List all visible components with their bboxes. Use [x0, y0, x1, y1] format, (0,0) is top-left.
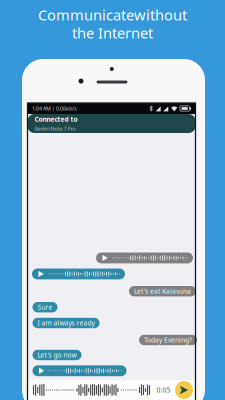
- button[interactable]: Play voice message: [96, 252, 193, 263]
- button[interactable]: Today Evening?: [139, 335, 197, 345]
- staticText: Communicatewithout: [38, 5, 187, 24]
- staticText: Connected to: [34, 115, 77, 124]
- button[interactable]: Let's go now: [32, 350, 81, 360]
- button[interactable]: Play voice message: [32, 365, 126, 376]
- staticText: Today Evening?: [144, 336, 192, 344]
- button[interactable]: Send: [174, 380, 193, 399]
- staticText: Sure: [37, 303, 52, 312]
- staticText: Let's go now: [37, 351, 76, 359]
- staticText: 0:05: [156, 386, 170, 394]
- staticText: the Internet: [72, 23, 153, 42]
- staticText: Redmi Note 7 Pro: [34, 125, 75, 132]
- button[interactable]: I am always ready: [32, 318, 99, 328]
- button[interactable]: Sure: [32, 302, 57, 312]
- button[interactable]: Let's eat Kalavuna: [129, 286, 196, 296]
- button[interactable]: Play voice message: [32, 268, 125, 279]
- staticText: 1:04 AM | 0.06kb/s: [32, 105, 77, 112]
- staticText: I am always ready: [37, 319, 94, 327]
- staticText: Let's eat Kalavuna: [134, 287, 191, 296]
